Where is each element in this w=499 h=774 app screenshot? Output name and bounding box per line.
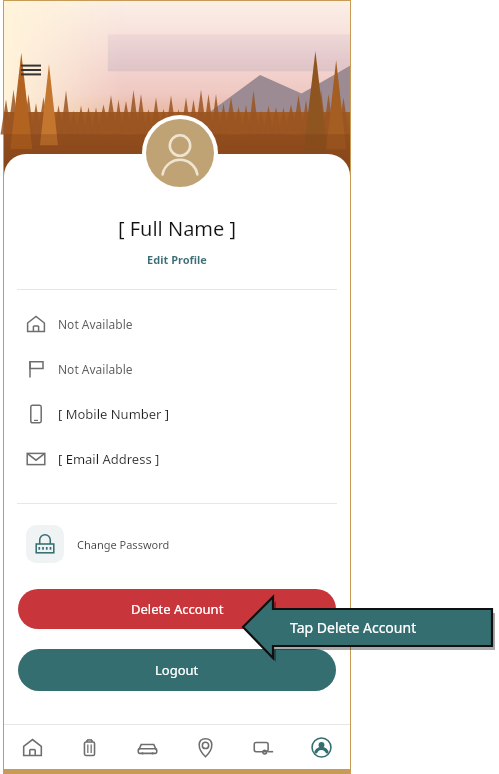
button[interactable]: Not Available [4, 301, 350, 346]
staticText: Delete Account [131, 600, 224, 618]
staticText: Logout [155, 661, 199, 679]
button[interactable]: Trailer [234, 725, 292, 769]
button[interactable]: Luggage [61, 725, 118, 769]
button[interactable]: Menu [14, 53, 48, 87]
staticText: Not Available [58, 361, 133, 377]
button[interactable]: Edit Profile [141, 250, 213, 269]
button[interactable]: Profile [292, 725, 350, 769]
staticText: [ Email Address ] [58, 450, 160, 468]
button[interactable]: [ Mobile Number ] [4, 391, 350, 436]
staticText: [ Full Name ] [4, 215, 350, 242]
button[interactable]: Home [4, 725, 61, 769]
staticText: Change Password [77, 537, 170, 552]
button[interactable]: Not Available [4, 346, 350, 391]
staticText: [ Mobile Number ] [58, 405, 170, 423]
button[interactable]: Change Password [4, 519, 350, 569]
button[interactable]: Profile photo [142, 115, 218, 191]
button[interactable]: Car [118, 725, 176, 769]
button[interactable]: Delete Account [18, 589, 336, 629]
staticText: Tap Delete Account [290, 618, 417, 637]
button[interactable]: Tap Delete Account [290, 613, 490, 641]
staticText: Not Available [58, 316, 133, 332]
button[interactable]: Location [176, 725, 234, 769]
staticText: Edit Profile [147, 252, 207, 267]
button[interactable]: [ Email Address ] [4, 436, 350, 481]
button[interactable]: Logout [18, 649, 336, 691]
